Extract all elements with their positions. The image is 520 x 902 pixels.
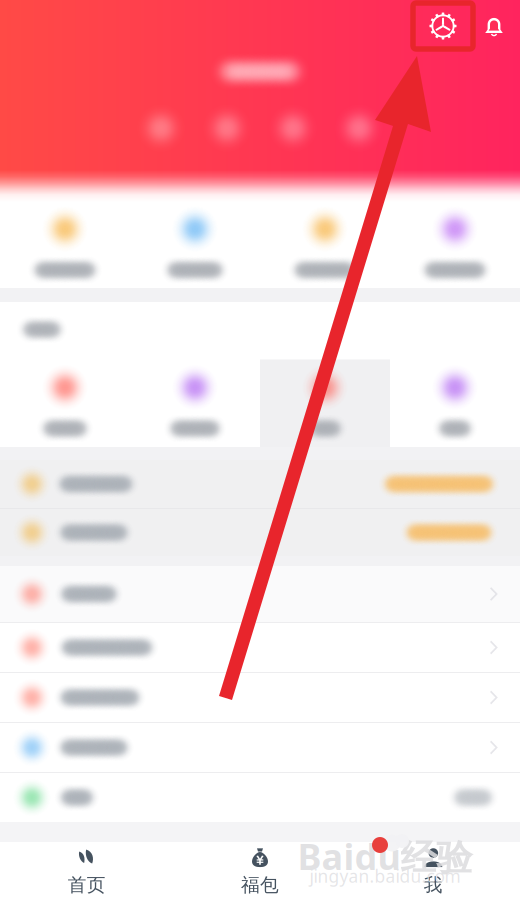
staticText: Baidu经验 bbox=[297, 832, 472, 880]
button[interactable]: List row bbox=[0, 460, 520, 508]
staticText: 福包 bbox=[241, 873, 279, 896]
staticText: 首页 bbox=[68, 873, 106, 896]
button[interactable]: List row bbox=[0, 773, 520, 822]
button[interactable]: List row bbox=[0, 673, 520, 722]
staticText: jingyan.baidu.com bbox=[309, 864, 460, 887]
button[interactable]: 福包 bbox=[173, 835, 347, 902]
button[interactable]: Settings bbox=[411, 1, 475, 51]
button[interactable]: List row bbox=[0, 723, 520, 772]
button[interactable]: List row bbox=[0, 509, 520, 556]
button[interactable]: Grid item bbox=[130, 359, 260, 447]
button[interactable]: 我 bbox=[347, 835, 520, 902]
button[interactable]: Grid item bbox=[260, 359, 390, 447]
button[interactable]: Grid item bbox=[390, 359, 520, 447]
button[interactable]: Grid item bbox=[0, 359, 130, 447]
button[interactable]: Notifications bbox=[475, 1, 511, 51]
staticText: 我 bbox=[424, 873, 443, 896]
button[interactable]: List row bbox=[0, 566, 520, 622]
button[interactable]: Grid item bbox=[130, 201, 260, 289]
button[interactable]: 首页 bbox=[0, 835, 173, 902]
button[interactable]: Grid item bbox=[260, 201, 390, 289]
button[interactable]: Grid item bbox=[0, 201, 130, 289]
button[interactable]: Grid item bbox=[390, 201, 520, 289]
button[interactable]: List row bbox=[0, 623, 520, 672]
